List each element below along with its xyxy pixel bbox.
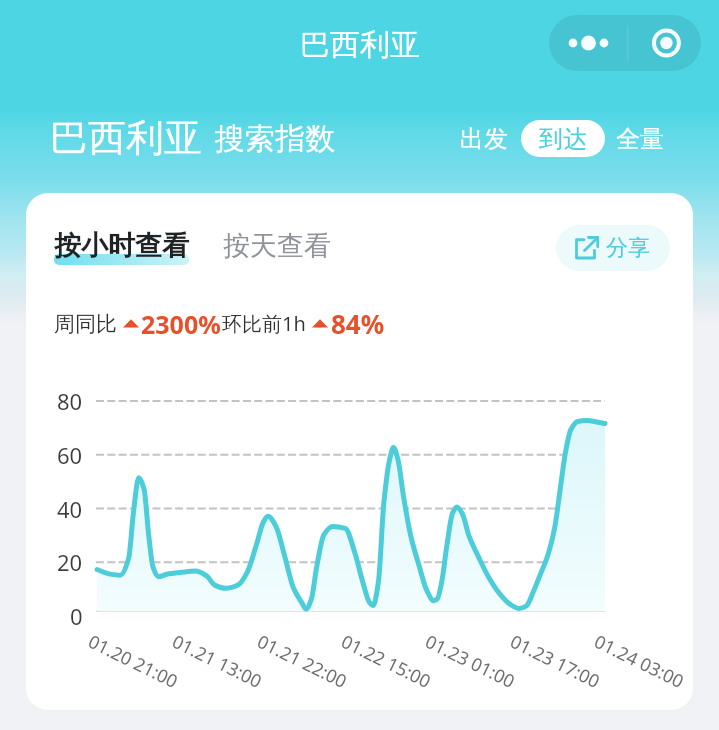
staticText: 环比前1h (222, 310, 306, 337)
staticText: 60 (57, 440, 83, 470)
staticText: 0 (70, 601, 83, 631)
staticText: 01.24 03:00 (590, 629, 688, 694)
button[interactable]: 分享 (556, 225, 670, 271)
staticText: 巴西利亚 (50, 114, 202, 162)
staticText: 全量 (616, 124, 664, 154)
staticText: 01.21 22:00 (253, 629, 351, 694)
staticText: 84% (331, 306, 385, 341)
staticText: 按天查看 (223, 229, 331, 263)
staticText: 按小时查看 (54, 229, 189, 263)
staticText: 周同比 (54, 311, 117, 337)
staticText: 01.21 13:00 (168, 629, 266, 694)
staticText: 01.23 01:00 (421, 629, 519, 694)
button[interactable]: 按天查看 (223, 229, 331, 263)
staticText: 搜索指数 (215, 120, 335, 158)
button[interactable]: 到达 (521, 120, 605, 157)
staticText: 80 (57, 386, 83, 416)
staticText: 2300% (141, 307, 221, 341)
staticText: 到达 (539, 124, 587, 154)
staticText: 01.20 21:00 (84, 629, 182, 694)
staticText: 巴西利亚 (300, 26, 420, 64)
staticText: 40 (57, 494, 83, 524)
button[interactable]: 按小时查看 (54, 229, 189, 263)
staticText: 出发 (460, 124, 508, 154)
staticText: 20 (57, 547, 83, 577)
staticText: 01.22 15:00 (337, 629, 435, 694)
staticText: 01.23 17:00 (506, 629, 604, 694)
button[interactable]: 出发 (454, 120, 514, 157)
button[interactable]: More options and close mini program (549, 15, 701, 71)
staticText: 分享 (606, 234, 650, 262)
button[interactable]: 全量 (610, 120, 670, 157)
